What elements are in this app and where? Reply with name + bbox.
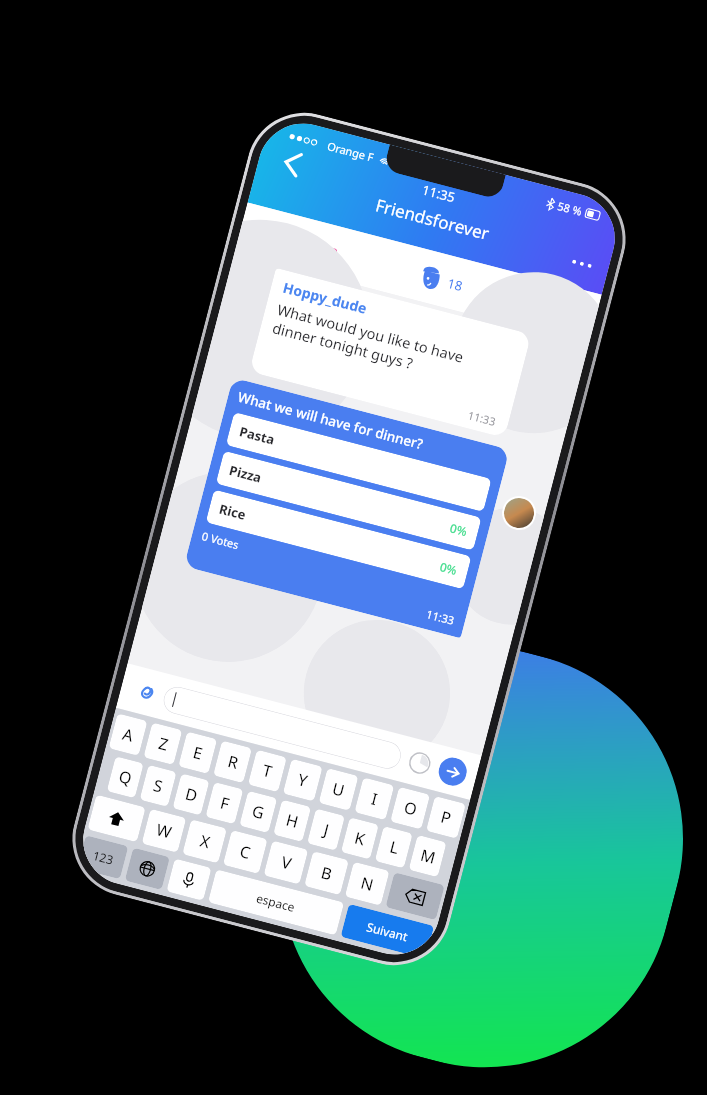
staticText: Q xyxy=(116,765,134,790)
staticText: F xyxy=(218,791,232,815)
button[interactable]: 123 xyxy=(77,835,128,879)
button[interactable]: Attach file xyxy=(128,673,164,710)
button[interactable]: H xyxy=(273,800,311,842)
staticText: A xyxy=(120,723,136,747)
staticText: 0% xyxy=(448,519,470,539)
staticText: P xyxy=(438,805,453,829)
button[interactable]: Dictate xyxy=(166,858,212,901)
button[interactable]: B xyxy=(304,851,349,895)
staticText: Friendsforever xyxy=(373,193,492,245)
button[interactable]: R xyxy=(213,740,252,783)
staticText: G xyxy=(250,800,267,824)
button[interactable]: Hoppy_dude avatar xyxy=(243,238,280,275)
button[interactable]: N xyxy=(345,862,390,906)
staticText: X xyxy=(197,830,213,853)
button[interactable]: 18 xyxy=(413,261,468,299)
staticText: J xyxy=(321,818,332,841)
staticText: S xyxy=(151,774,165,798)
staticText: Pasta xyxy=(237,422,277,449)
button[interactable]: Y xyxy=(283,759,323,802)
staticText: 0% xyxy=(438,558,460,578)
button[interactable]: P xyxy=(426,796,466,839)
button[interactable]: Pizza xyxy=(216,451,482,551)
staticText: O xyxy=(402,796,420,820)
staticText: Pizza xyxy=(227,461,264,487)
button[interactable]: O xyxy=(390,787,430,829)
button[interactable]: G xyxy=(239,791,277,833)
staticText: Orange F xyxy=(326,138,376,165)
button[interactable]: Hoppy_dude xyxy=(249,268,531,438)
button[interactable]: T xyxy=(248,750,287,792)
staticText: V xyxy=(279,851,294,875)
staticText: What we will have for dinner? xyxy=(236,388,425,453)
button[interactable]: E xyxy=(178,731,217,774)
button[interactable]: L xyxy=(375,826,413,868)
button[interactable]: 22 xyxy=(288,228,343,267)
staticText: N xyxy=(358,871,376,896)
button[interactable]: Send xyxy=(436,755,470,789)
button[interactable]: Change language xyxy=(125,848,170,890)
button[interactable]: V xyxy=(263,840,308,885)
button[interactable]: A xyxy=(108,713,148,756)
button[interactable]: Z xyxy=(143,722,182,765)
button[interactable]: Pasta xyxy=(226,412,492,512)
button[interactable]: What we will have for dinner? xyxy=(184,377,510,638)
button[interactable]: S xyxy=(139,765,177,807)
button[interactable]: Rice xyxy=(206,489,472,589)
staticText: M xyxy=(418,844,438,869)
button[interactable]: M xyxy=(409,835,447,877)
staticText: W xyxy=(154,818,174,843)
staticText: H xyxy=(284,809,301,833)
button[interactable]: F xyxy=(205,782,243,824)
button[interactable]: U xyxy=(318,768,358,811)
button[interactable]: Backspace xyxy=(385,872,445,920)
staticText: B xyxy=(318,861,335,885)
staticText: L xyxy=(387,836,401,859)
button[interactable]: Q xyxy=(107,756,144,798)
button[interactable]: Shift xyxy=(87,795,146,842)
button[interactable]: espace xyxy=(208,869,344,935)
staticText: D xyxy=(183,782,200,807)
button[interactable]: Member avatar xyxy=(501,495,537,531)
staticText: C xyxy=(237,840,253,864)
staticText: 11:33 xyxy=(466,407,498,429)
staticText: 123 xyxy=(91,847,115,868)
button[interactable]: Create poll xyxy=(404,747,436,779)
staticText: Z xyxy=(156,732,171,756)
staticText: Suivant xyxy=(365,918,410,944)
button[interactable]: Suivant xyxy=(340,904,434,959)
button[interactable]: W xyxy=(141,809,186,853)
button[interactable]: D xyxy=(172,773,209,815)
staticText: 11:35 xyxy=(420,180,458,206)
staticText: espace xyxy=(255,890,297,915)
button[interactable]: X xyxy=(182,819,227,863)
staticText: 11:33 xyxy=(425,606,457,628)
staticText: T xyxy=(260,759,275,783)
staticText: 18 xyxy=(445,274,465,295)
staticText: What would you like to have dinner tonig… xyxy=(270,299,513,397)
staticText: U xyxy=(330,777,347,802)
button[interactable]: J xyxy=(307,808,345,851)
staticText: 0 Votes xyxy=(200,528,241,552)
button[interactable]: C xyxy=(223,830,268,874)
staticText: R xyxy=(225,750,241,774)
staticText: Rice xyxy=(217,500,248,524)
staticText: 22 xyxy=(321,241,340,263)
button[interactable]: I xyxy=(354,777,394,820)
staticText: I xyxy=(369,787,380,810)
staticText: E xyxy=(191,741,205,765)
button[interactable]: K xyxy=(341,817,379,860)
staticText: K xyxy=(352,826,367,850)
staticText: Hoppy_dude xyxy=(281,278,369,318)
button[interactable] xyxy=(161,684,404,772)
button[interactable]: More options xyxy=(556,238,607,289)
button[interactable]: Back xyxy=(269,140,315,187)
staticText: 58 % xyxy=(556,198,584,219)
staticText: Y xyxy=(295,768,310,792)
